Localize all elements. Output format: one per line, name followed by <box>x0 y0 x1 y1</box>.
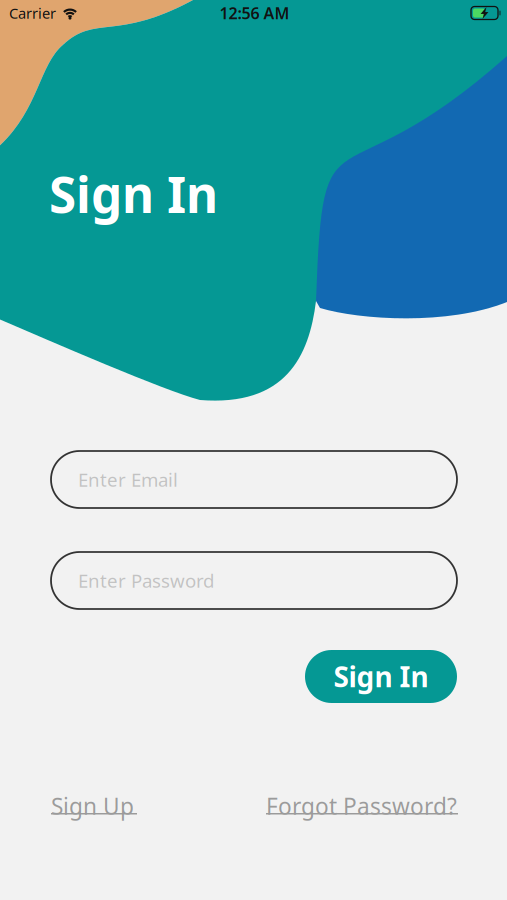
button[interactable]: Forgot Password? <box>266 791 458 821</box>
staticText: Sign In <box>49 161 218 226</box>
staticText: Sign Up <box>51 791 134 821</box>
staticText: 12:56 AM <box>219 2 289 24</box>
staticText: Forgot Password? <box>266 791 457 821</box>
button[interactable]: Enter Email <box>51 451 457 508</box>
button[interactable]: Sign Up <box>51 791 137 821</box>
staticText: Sign In <box>333 658 428 695</box>
staticText: Enter Password <box>78 568 214 593</box>
button[interactable]: Enter Password <box>51 552 457 609</box>
button[interactable]: Sign In <box>305 650 457 703</box>
staticText: Carrier <box>9 3 56 23</box>
staticText: Enter Email <box>78 467 178 492</box>
